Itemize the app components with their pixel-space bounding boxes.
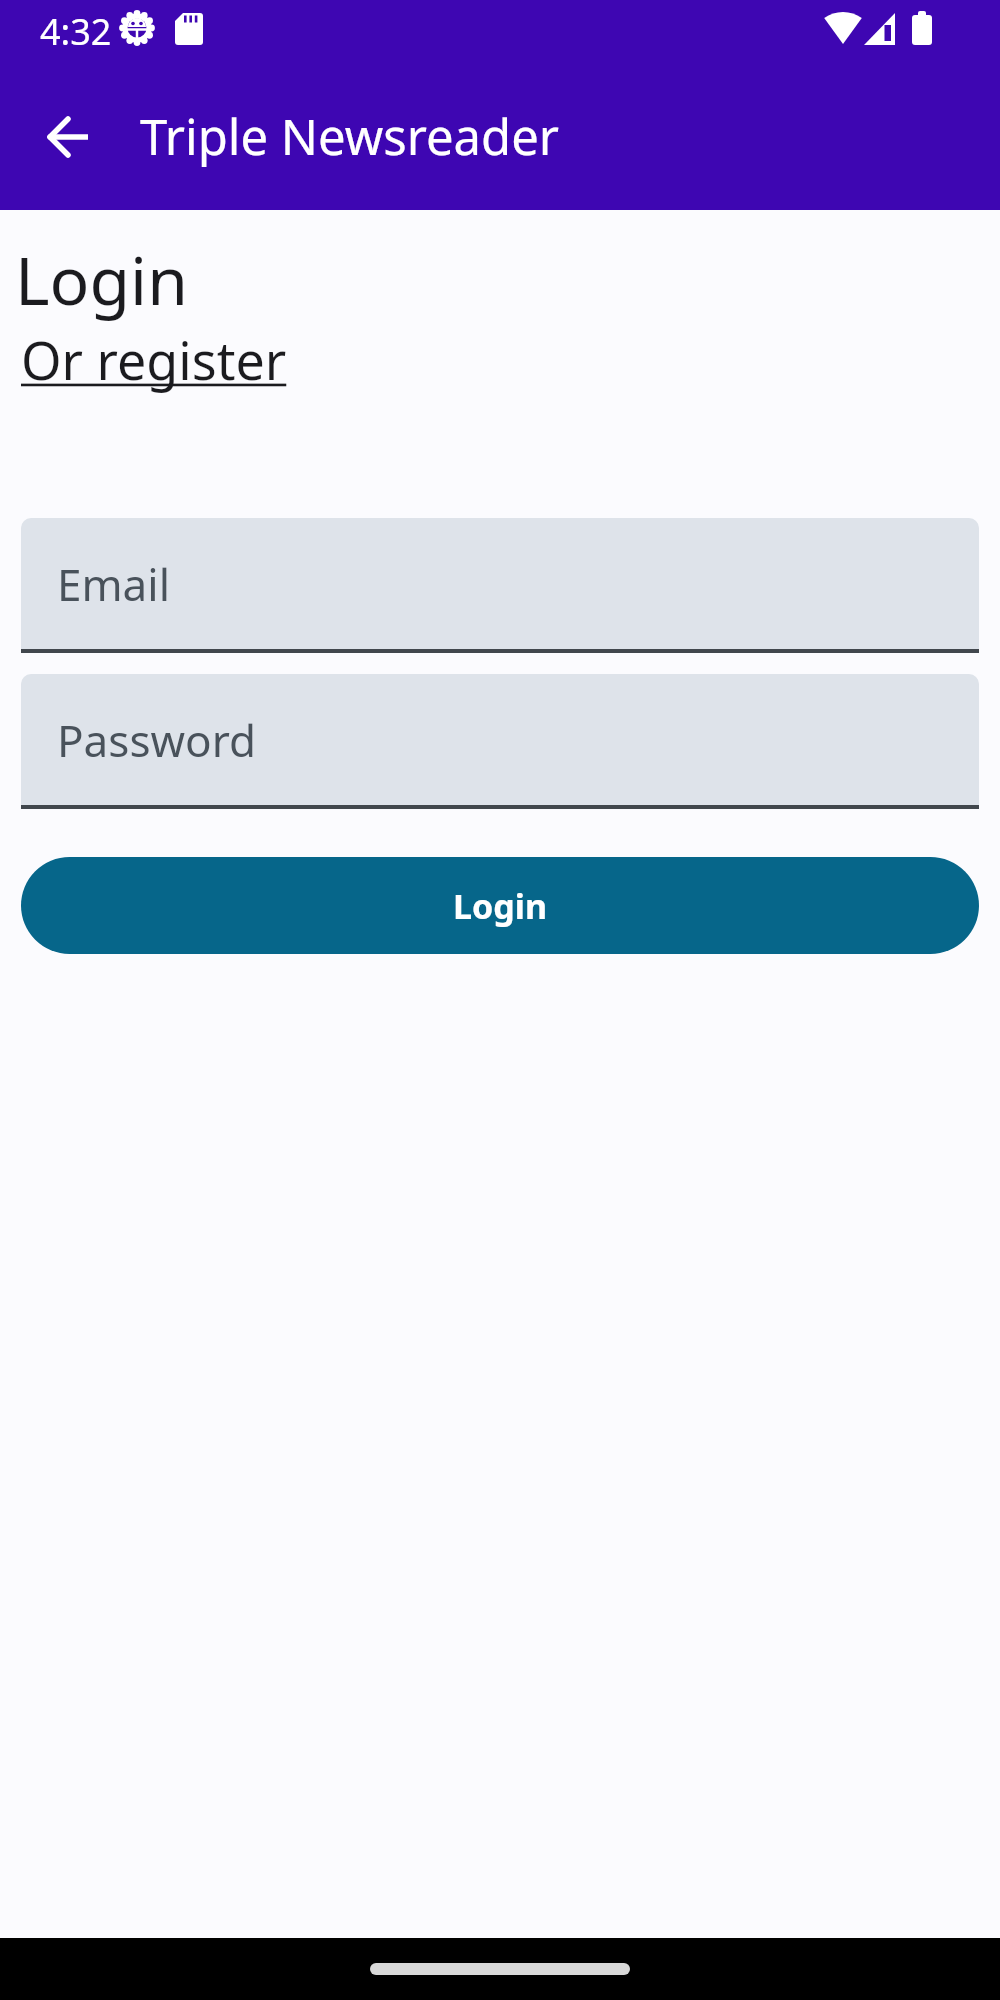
- staticText: Triple Newsreader: [140, 103, 560, 170]
- button[interactable]: Login: [21, 857, 979, 954]
- staticText: Login: [453, 883, 548, 929]
- button[interactable]: Email: [21, 518, 979, 653]
- staticText: Password: [57, 710, 257, 770]
- staticText: Login: [15, 234, 188, 324]
- staticText: 4:32: [40, 7, 112, 56]
- button[interactable]: Password: [21, 674, 979, 809]
- button[interactable]: [42, 110, 96, 164]
- staticText: Email: [57, 554, 170, 614]
- button[interactable]: Or register: [21, 324, 287, 395]
